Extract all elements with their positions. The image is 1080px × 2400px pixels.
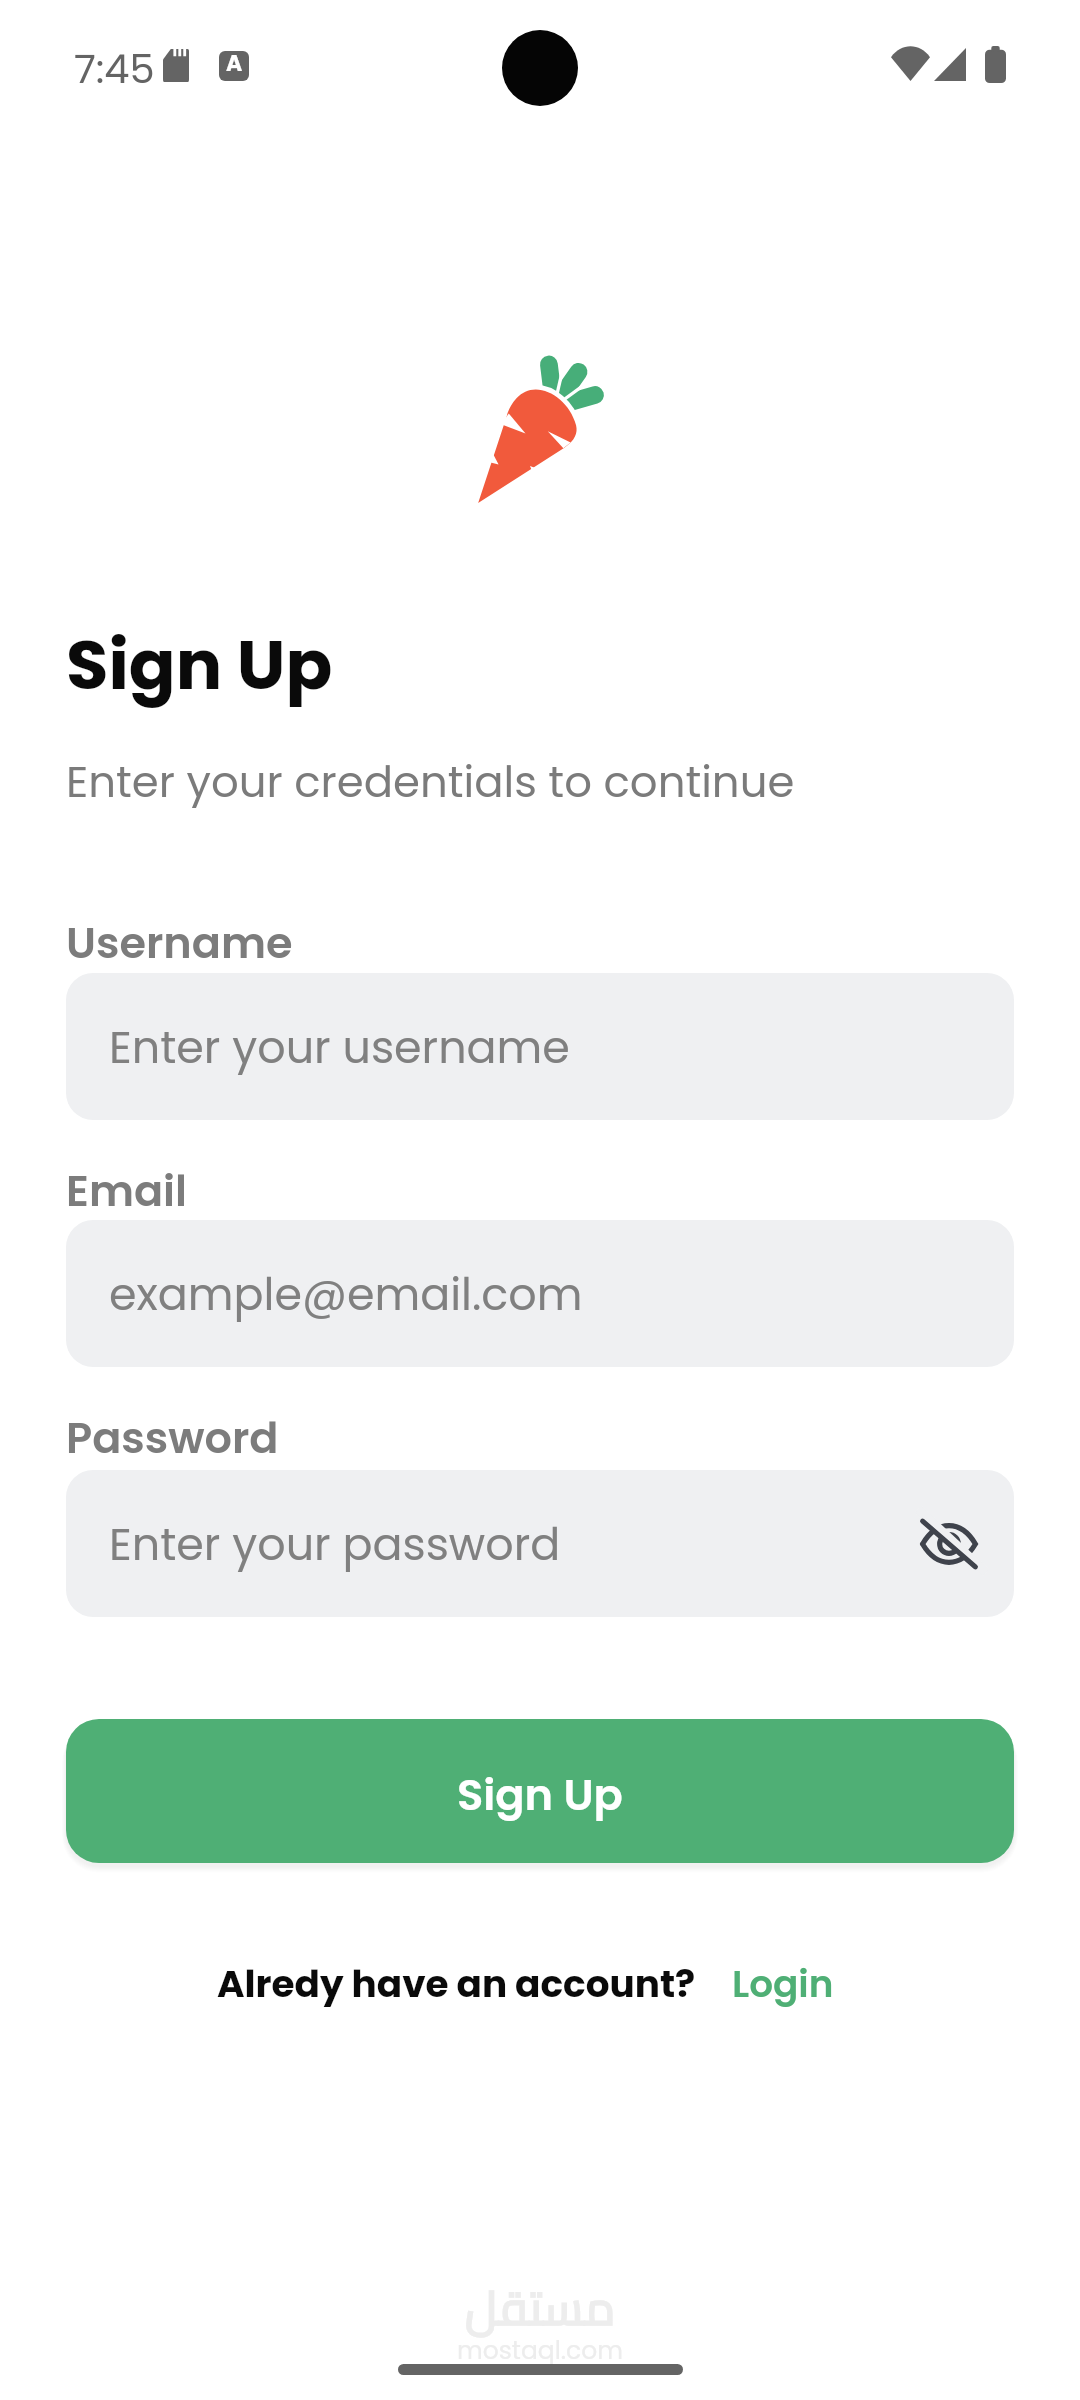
staticText: A (226, 48, 243, 78)
button[interactable]: Login (732, 1958, 834, 2010)
button[interactable]: example@email.com (66, 1220, 1014, 1367)
staticText: Username (66, 913, 293, 973)
button[interactable]: Show password (916, 1511, 982, 1577)
staticText: example@email.com (109, 1263, 583, 1325)
staticText: Sign Up (66, 617, 333, 714)
staticText: Alredy have an account? (217, 1958, 696, 2010)
staticText: Enter your credentials to continue (66, 751, 795, 812)
staticText: Email (66, 1161, 188, 1221)
button[interactable]: Enter your password (66, 1470, 1014, 1617)
staticText: Password (66, 1408, 279, 1468)
staticText: Enter your password (109, 1513, 561, 1575)
button[interactable]: Sign Up (66, 1719, 1014, 1863)
button[interactable]: Enter your username (66, 973, 1014, 1120)
staticText: mostaql.com (457, 2333, 624, 2368)
staticText: مستقل (465, 2262, 616, 2352)
staticText: 7:45 (74, 41, 155, 97)
staticText: Sign Up (457, 1765, 623, 1825)
staticText: Login (732, 1958, 834, 2010)
staticText: Enter your username (109, 1016, 570, 1078)
